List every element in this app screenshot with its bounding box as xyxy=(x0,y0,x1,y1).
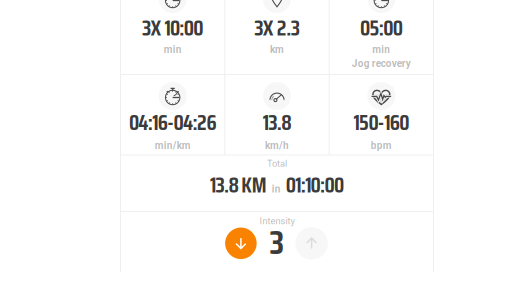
staticText: min xyxy=(372,44,390,55)
staticText: min/km xyxy=(155,140,191,151)
staticText: Intensity xyxy=(259,215,294,226)
staticText: min xyxy=(164,44,182,55)
button[interactable]: 04:16-04:26 xyxy=(209,137,296,170)
button[interactable]: Increase intensity xyxy=(295,227,328,260)
staticText: bpm xyxy=(371,140,392,151)
staticText: km/h xyxy=(265,140,289,151)
staticText: km xyxy=(270,44,284,55)
staticText: 13.8 KM xyxy=(210,168,267,202)
button[interactable]: 13.8 xyxy=(238,137,267,170)
button[interactable]: Decrease intensity xyxy=(225,228,257,259)
staticText: in xyxy=(272,183,281,195)
staticText: Jog recovery xyxy=(352,58,411,69)
button[interactable]: 05:00 xyxy=(223,137,282,170)
button[interactable]: 3X 2.3 xyxy=(230,137,275,170)
button[interactable]: 150-160 xyxy=(225,137,280,170)
staticText: 05:00 xyxy=(360,11,403,45)
staticText: 04:16-04:26 xyxy=(129,106,216,139)
staticText: 150-160 xyxy=(353,106,409,139)
button[interactable]: 3X 10:00 xyxy=(222,137,283,170)
staticText: 3X 2.3 xyxy=(254,11,300,45)
staticText: 01:10:00 xyxy=(286,168,344,202)
button[interactable]: Total xyxy=(186,137,319,170)
staticText: 3X 10:00 xyxy=(142,11,203,45)
staticText: Total xyxy=(267,158,287,169)
staticText: 3 xyxy=(269,216,284,269)
staticText: 13.8 xyxy=(263,106,291,139)
